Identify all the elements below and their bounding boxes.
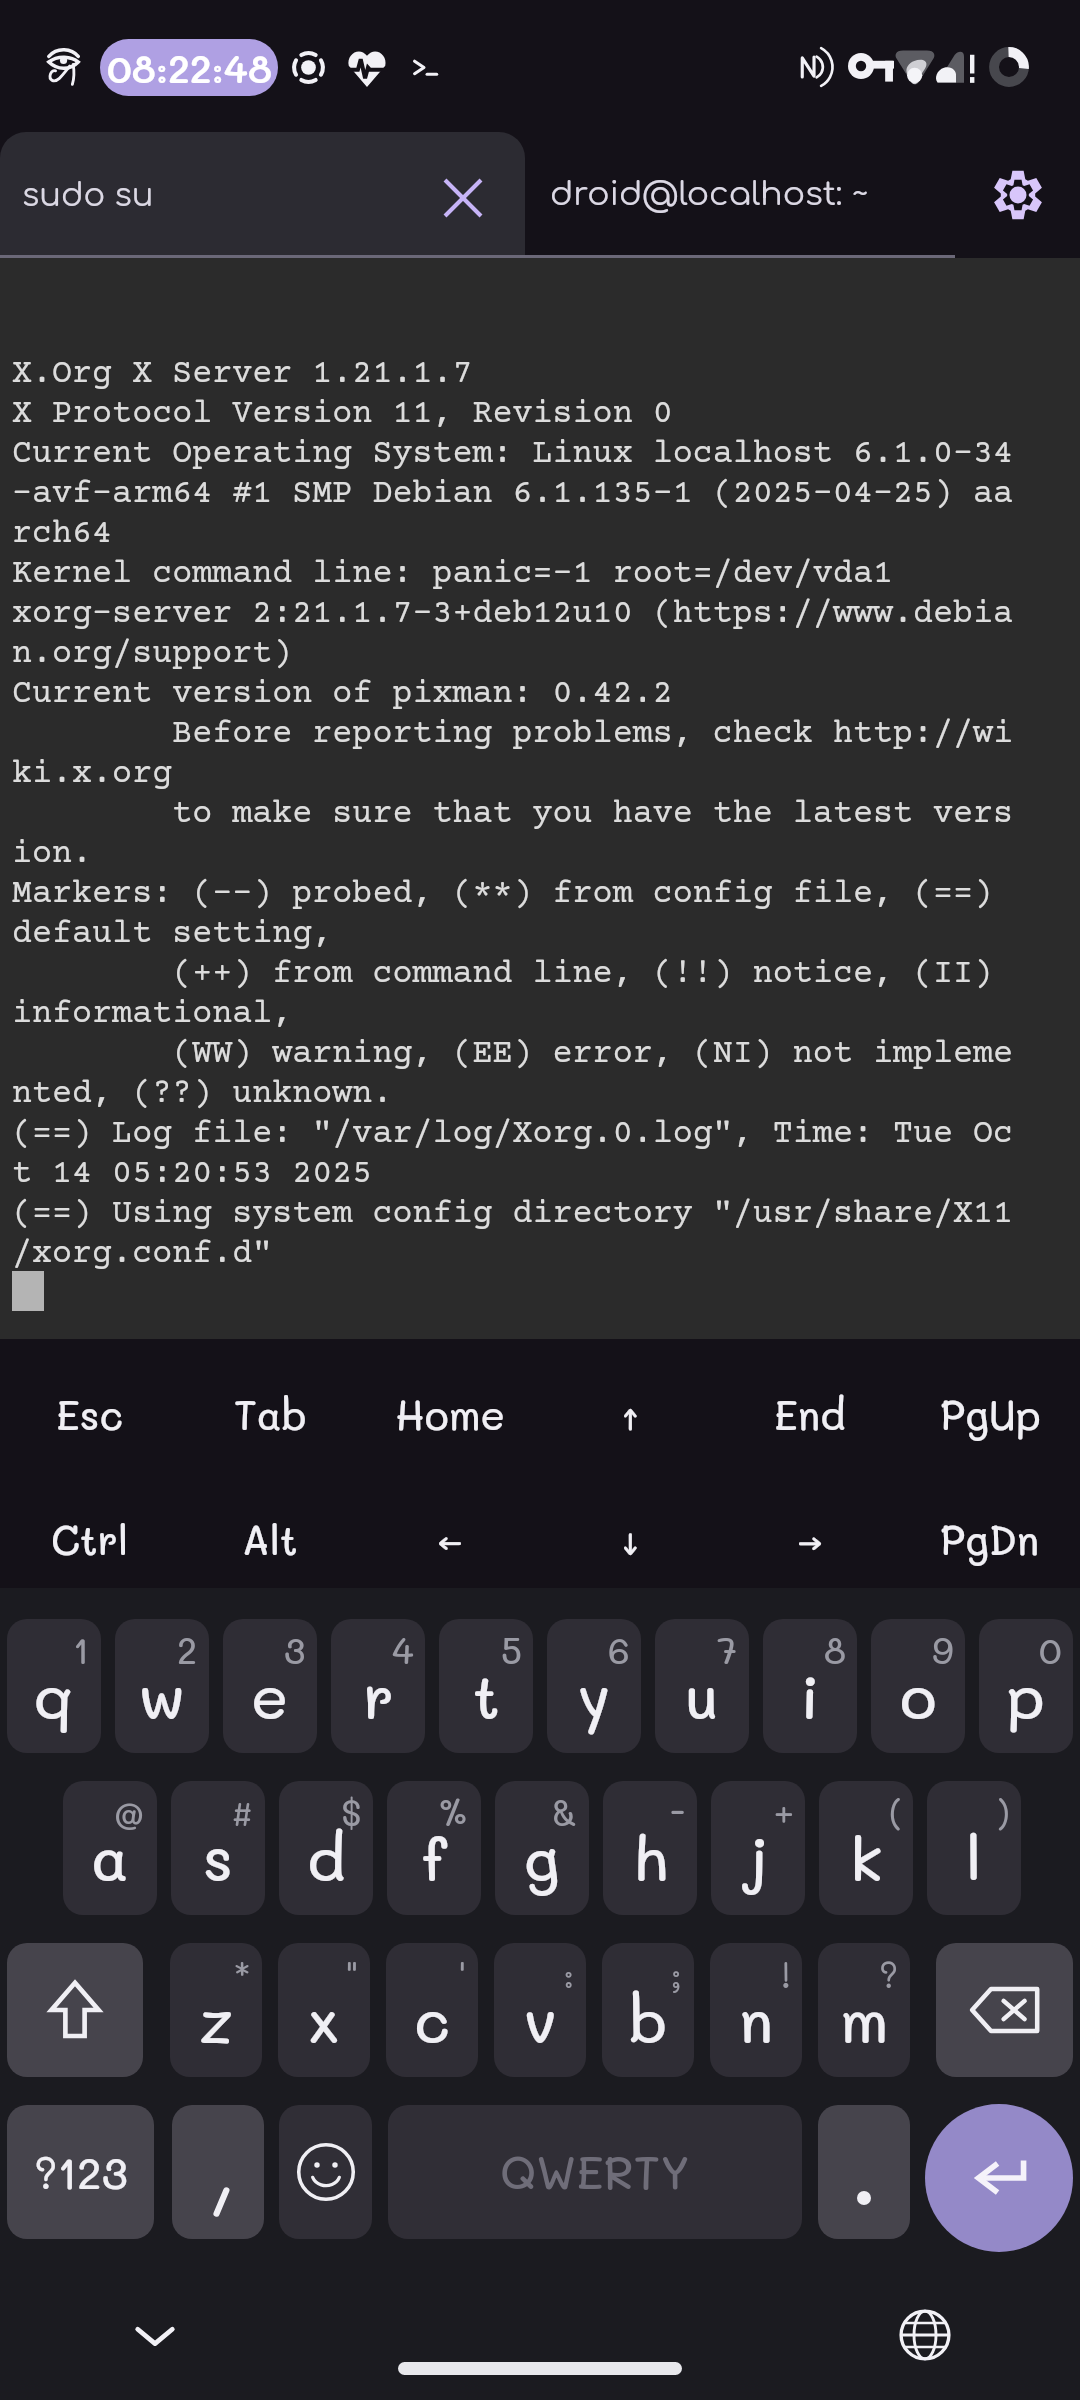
button[interactable]: @ (63, 1781, 157, 1915)
staticText: o (900, 1655, 937, 1734)
staticText: + (774, 1788, 794, 1835)
button[interactable]: → (720, 1464, 900, 1588)
staticText: ?123 (34, 2144, 128, 2201)
button[interactable]: Settings (955, 132, 1080, 258)
staticText: Alt (242, 1513, 298, 1565)
staticText: QWERTY (500, 2142, 691, 2202)
staticText: 2 (177, 1626, 198, 1673)
button[interactable]: ' (386, 1943, 478, 2077)
button[interactable]: ↑ (540, 1339, 720, 1463)
button[interactable]: ?123 (7, 2105, 154, 2239)
button[interactable]: PgDn (900, 1464, 1080, 1588)
staticText: ↑ (620, 1388, 641, 1440)
staticText: 7 (717, 1626, 738, 1673)
button[interactable]: Ctrl (0, 1464, 180, 1588)
button[interactable]: Esc (0, 1339, 180, 1463)
button[interactable]: Change language (888, 2298, 962, 2372)
staticText: f (422, 1817, 447, 1896)
button[interactable]: * (170, 1943, 262, 2077)
staticText: a (91, 1817, 129, 1896)
staticText: p (1007, 1655, 1045, 1734)
staticText: v (524, 1979, 557, 2058)
button[interactable]: - (603, 1781, 697, 1915)
staticText: # (231, 1788, 254, 1835)
button[interactable]: # (171, 1781, 265, 1915)
button[interactable]: Close tab (425, 160, 501, 236)
button[interactable]: " (278, 1943, 370, 2077)
button[interactable]: PgUp (900, 1339, 1080, 1463)
staticText: d (307, 1817, 346, 1896)
button[interactable]: 8 (763, 1619, 857, 1753)
staticText: @ (113, 1788, 146, 1835)
staticText: c (414, 1979, 451, 2058)
staticText: 3 (284, 1626, 306, 1673)
button[interactable]: End (720, 1339, 900, 1463)
button[interactable]: & (495, 1781, 589, 1915)
staticText: ← (435, 1513, 465, 1565)
staticText: h (633, 1817, 668, 1896)
staticText: → (795, 1513, 826, 1565)
button[interactable]: ? (818, 1943, 910, 2077)
staticText: e (251, 1655, 289, 1734)
button[interactable]: : (494, 1943, 586, 2077)
button[interactable]: Backspace (936, 1943, 1073, 2077)
staticText: droid@localhost: ~ (550, 176, 868, 213)
staticText: : (563, 1950, 575, 1997)
staticText: X.Org X Server 1.21.1.7 X Protocol Versi… (12, 354, 1014, 1274)
button[interactable]: Tab (180, 1339, 360, 1463)
button[interactable]: 1 (7, 1619, 101, 1753)
button[interactable]: + (711, 1781, 805, 1915)
staticText: * (233, 1950, 251, 1997)
staticText: u (685, 1655, 719, 1734)
staticText: Ctrl (51, 1513, 129, 1565)
staticText: 8 (824, 1626, 846, 1673)
button[interactable]: ; (602, 1943, 694, 2077)
button[interactable]: 0 (979, 1619, 1073, 1753)
button[interactable]: Comma (172, 2105, 264, 2239)
button[interactable]: sudo su (0, 132, 525, 258)
staticText: ! (781, 1950, 791, 1997)
button[interactable]: 6 (547, 1619, 641, 1753)
staticText: 9 (932, 1626, 954, 1673)
button[interactable]: Home (360, 1339, 540, 1463)
button[interactable]: ← (360, 1464, 540, 1588)
button[interactable]: QWERTY (388, 2105, 802, 2239)
staticText: 0 (1039, 1626, 1062, 1673)
button[interactable]: ↓ (540, 1464, 720, 1588)
button[interactable]: ) (927, 1781, 1021, 1915)
button[interactable]: 7 (655, 1619, 749, 1753)
button[interactable]: Hide keyboard (118, 2298, 192, 2372)
button[interactable]: ( (819, 1781, 913, 1915)
button[interactable]: 3 (223, 1619, 317, 1753)
button[interactable]: 5 (439, 1619, 533, 1753)
button[interactable]: Enter (925, 2104, 1073, 2252)
button[interactable]: 9 (871, 1619, 965, 1753)
staticText: ) (997, 1788, 1010, 1835)
button[interactable]: % (387, 1781, 481, 1915)
staticText: t (473, 1655, 500, 1734)
button[interactable]: 2 (115, 1619, 209, 1753)
button[interactable]: droid@localhost: ~ (525, 132, 955, 258)
button[interactable]: Emoji (279, 2105, 372, 2239)
staticText: m (840, 1979, 889, 2058)
staticText: r (363, 1655, 394, 1734)
staticText: Esc (56, 1388, 124, 1440)
staticText: PgUp (940, 1388, 1041, 1440)
staticText: Tab (234, 1388, 307, 1440)
staticText: s (203, 1817, 234, 1896)
staticText: j (747, 1817, 769, 1896)
button[interactable]: Shift (7, 1943, 143, 2077)
staticText: - (670, 1788, 686, 1835)
button[interactable]: 4 (331, 1619, 425, 1753)
button[interactable]: Alt (180, 1464, 360, 1588)
button[interactable]: $ (279, 1781, 373, 1915)
staticText: 1 (73, 1626, 90, 1673)
staticText: w (138, 1655, 186, 1734)
button[interactable]: ! (710, 1943, 802, 2077)
staticText: z (199, 1979, 234, 2058)
staticText: 5 (501, 1626, 522, 1673)
staticText: ' (458, 1950, 467, 1997)
button[interactable]: Period (818, 2105, 910, 2239)
staticText: 08:22:48 (107, 42, 272, 93)
staticText: 6 (608, 1626, 630, 1673)
